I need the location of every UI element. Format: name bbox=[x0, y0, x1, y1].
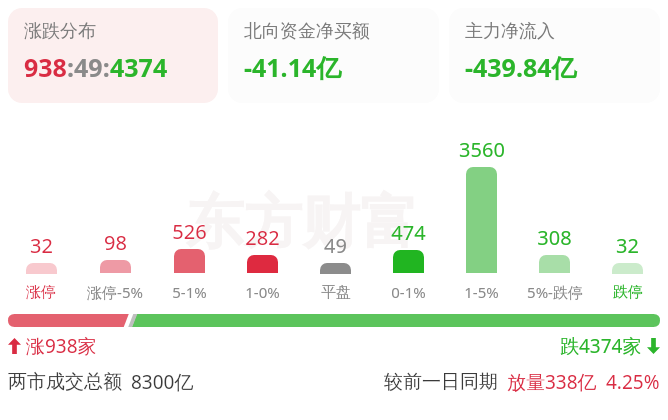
staticText: 涨停-5% bbox=[87, 282, 143, 302]
staticText: 4374 bbox=[110, 50, 168, 84]
staticText: 涨938家 bbox=[26, 333, 97, 359]
staticText: 32 bbox=[616, 232, 639, 259]
staticText: 5%-跌停 bbox=[527, 282, 583, 302]
staticText: 32 bbox=[30, 232, 53, 259]
staticText: :49: bbox=[67, 50, 110, 84]
staticText: 涨停 bbox=[26, 283, 56, 302]
staticText: 938 bbox=[24, 50, 67, 84]
button[interactable]: 跌4374家 bbox=[560, 333, 660, 359]
button[interactable]: 308 bbox=[518, 224, 591, 302]
button[interactable]: 3560 bbox=[445, 136, 518, 302]
staticText: -439.84亿 bbox=[465, 50, 577, 84]
staticText: 平盘 bbox=[321, 283, 351, 302]
other: Advancing bbox=[8, 338, 21, 354]
button[interactable]: 32 bbox=[591, 232, 664, 302]
staticText: 东方财富 bbox=[186, 186, 418, 259]
staticText: -41.14亿 bbox=[244, 50, 342, 84]
staticText: 98 bbox=[104, 229, 127, 256]
staticText: 526 bbox=[172, 218, 207, 245]
staticText: 49 bbox=[324, 232, 347, 259]
button[interactable]: 北向资金净买额 bbox=[228, 8, 439, 103]
button[interactable]: 474 bbox=[372, 219, 445, 302]
button[interactable] bbox=[8, 314, 660, 327]
staticText: 308 bbox=[537, 224, 572, 251]
staticText: 8300亿 bbox=[131, 369, 194, 395]
staticText: 两市成交总额 bbox=[8, 370, 122, 394]
button[interactable]: 49 bbox=[299, 232, 372, 302]
staticText: 跌停 bbox=[613, 283, 643, 302]
button[interactable]: 涨跌分布 bbox=[8, 8, 218, 103]
staticText: 1-0% bbox=[245, 282, 280, 302]
button[interactable]: 主力净流入 bbox=[449, 8, 660, 103]
button[interactable]: 98 bbox=[78, 229, 152, 302]
button[interactable]: Advancing bbox=[8, 333, 97, 359]
staticText: 放量338亿 bbox=[507, 369, 597, 395]
staticText: 4.25% bbox=[606, 369, 660, 395]
other: Declining bbox=[647, 338, 660, 354]
staticText: 主力净流入 bbox=[465, 20, 555, 43]
staticText: 282 bbox=[245, 224, 280, 251]
staticText: 北向资金净买额 bbox=[244, 20, 370, 43]
button[interactable]: 282 bbox=[226, 224, 299, 302]
button[interactable]: 32 bbox=[4, 232, 78, 302]
button[interactable]: 两市成交总额 bbox=[8, 369, 194, 395]
staticText: 3560 bbox=[459, 136, 505, 163]
staticText: 跌4374家 bbox=[560, 333, 642, 359]
staticText: 较前一日同期 bbox=[384, 370, 498, 394]
staticText: 0-1% bbox=[391, 282, 426, 302]
button[interactable]: 526 bbox=[152, 218, 226, 302]
staticText: 474 bbox=[391, 219, 426, 246]
staticText: 1-5% bbox=[464, 282, 499, 302]
staticText: 涨跌分布 bbox=[24, 20, 96, 43]
button[interactable]: 较前一日同期 bbox=[384, 369, 660, 395]
staticText: 5-1% bbox=[172, 282, 207, 302]
